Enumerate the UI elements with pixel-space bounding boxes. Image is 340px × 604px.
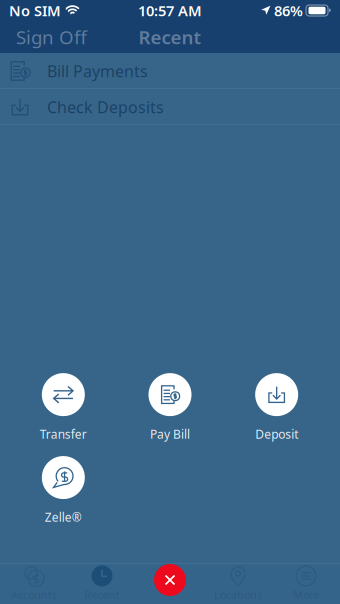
button[interactable]: Bill Payments xyxy=(0,53,340,89)
staticText: Transfer xyxy=(40,426,87,442)
staticText: Recent xyxy=(138,25,201,49)
button[interactable]: Recent xyxy=(68,563,136,604)
button[interactable]: Close menu xyxy=(136,562,204,604)
staticText: Sign Off xyxy=(16,25,87,49)
staticText: 86% xyxy=(274,1,303,20)
button[interactable]: Check Deposits xyxy=(0,89,340,125)
button[interactable]: Transfer xyxy=(10,373,117,442)
button[interactable]: Deposit xyxy=(223,373,330,442)
staticText: No SIM xyxy=(9,1,61,20)
staticText: Zelle® xyxy=(45,509,82,525)
staticText: Pay Bill xyxy=(150,426,190,442)
staticText: Bill Payments xyxy=(47,60,148,82)
staticText: 10:57 AM xyxy=(138,1,202,20)
staticText: Deposit xyxy=(255,426,298,442)
staticText: Check Deposits xyxy=(47,96,164,118)
button[interactable]: Sign Off xyxy=(0,21,103,53)
button[interactable]: Pay Bill xyxy=(117,373,223,442)
button[interactable]: Zelle® xyxy=(10,456,117,525)
